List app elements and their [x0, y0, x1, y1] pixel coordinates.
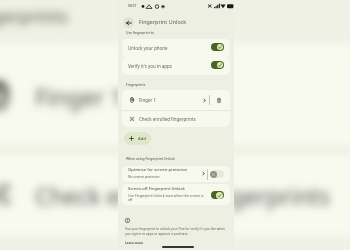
staticText: 08:57 [128, 3, 137, 7]
staticText: Fingerprints [126, 82, 146, 86]
button[interactable]: Unlock your phone [122, 39, 230, 57]
staticText: Use fingerprint to [126, 30, 155, 34]
staticText: Add [138, 136, 146, 142]
button[interactable]: Back [123, 17, 134, 28]
staticText: Verify it's you in apps [128, 63, 172, 69]
button[interactable]: Verify it's you in apps [122, 57, 230, 75]
staticText: When using Fingerprint Unlock [126, 156, 175, 160]
staticText: Learn more [125, 240, 144, 244]
button[interactable]: Check enrolled fingerprints [122, 110, 230, 127]
staticText: Unlock your phone [128, 45, 168, 51]
button[interactable] [0, 43, 350, 236]
button[interactable]: Turn on [210, 170, 224, 178]
button[interactable]: Finger 1 [122, 90, 230, 110]
staticText: Finger 1 [139, 97, 156, 103]
button[interactable]: Turn off [211, 61, 224, 69]
staticText: Use your fingerprint to unlock your Pixe… [125, 227, 228, 236]
button[interactable] [122, 184, 230, 205]
button[interactable] [122, 90, 230, 127]
button[interactable]: Learn more [125, 240, 144, 244]
button[interactable]: Turn off [211, 43, 224, 51]
staticText: No screen protector [128, 174, 160, 179]
button[interactable]: Check enrolled fingerprints [0, 147, 350, 236]
staticText: Fingerprint Unlock [139, 18, 187, 25]
staticText: Finger 1 [35, 80, 124, 111]
staticText: Fingerprints [0, 2, 72, 23]
button[interactable] [122, 166, 230, 182]
button[interactable]: Add [124, 132, 151, 145]
staticText: Use Fingerprint Unlock even when the scr… [128, 193, 208, 202]
staticText: Check enrolled fingerprints [139, 116, 196, 122]
button[interactable]: Delete fingerprint [214, 96, 223, 105]
staticText: Screen-off Fingerprint Unlock [128, 186, 185, 192]
button[interactable]: Finger 1 [0, 43, 350, 147]
staticText: Optimise for screen protector [128, 167, 188, 173]
staticText: Check enrolled fingerprints [35, 179, 332, 210]
button[interactable]: Turn off Screen-off Fingerprint Unlock [211, 191, 224, 199]
